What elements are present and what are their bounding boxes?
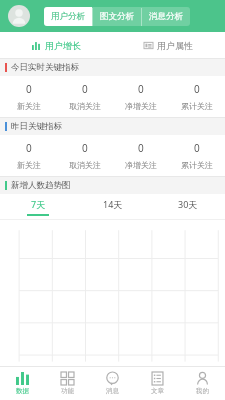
staticText: 用户增长 bbox=[45, 40, 81, 51]
button[interactable]: Profile bbox=[8, 5, 30, 27]
button[interactable]: 消息 bbox=[90, 367, 135, 400]
staticText: 功能 bbox=[61, 387, 74, 395]
staticText: 消息分析 bbox=[149, 11, 183, 22]
button[interactable]: 用户属性 bbox=[112, 32, 225, 58]
staticText: 新增人数趋势图 bbox=[11, 180, 71, 191]
staticText: 我的 bbox=[196, 387, 209, 395]
staticText: 今日实时关键指标 bbox=[11, 62, 79, 73]
staticText: 取消关注 bbox=[69, 160, 101, 170]
staticText: 净增关注 bbox=[125, 160, 157, 170]
staticText: 30天 bbox=[178, 198, 198, 210]
staticText: 0 bbox=[138, 82, 144, 96]
staticText: 0 bbox=[26, 141, 32, 155]
button[interactable]: 14天 bbox=[75, 194, 150, 219]
staticText: 取消关注 bbox=[69, 101, 101, 111]
button[interactable]: 30天 bbox=[150, 194, 225, 219]
staticText: 数据 bbox=[16, 387, 29, 395]
button[interactable]: 消息分析 bbox=[142, 7, 190, 26]
staticText: 0 bbox=[194, 82, 200, 96]
button[interactable]: 我的 bbox=[180, 367, 225, 400]
staticText: 0 bbox=[194, 141, 200, 155]
staticText: 累计关注 bbox=[181, 101, 213, 111]
staticText: 昨日关键指标 bbox=[11, 121, 62, 132]
staticText: 用户属性 bbox=[157, 40, 193, 51]
button[interactable]: 文章 bbox=[135, 367, 180, 400]
staticText: 新关注 bbox=[17, 101, 41, 111]
staticText: 净增关注 bbox=[125, 101, 157, 111]
button[interactable]: 功能 bbox=[45, 367, 90, 400]
staticText: 0 bbox=[138, 141, 144, 155]
button[interactable]: 0 bbox=[169, 76, 225, 117]
button[interactable]: 0 bbox=[57, 76, 113, 117]
staticText: 图文分析 bbox=[100, 11, 134, 22]
button[interactable]: 7天 bbox=[0, 194, 75, 219]
button[interactable]: 用户分析 bbox=[44, 7, 92, 26]
button[interactable]: 0 bbox=[113, 76, 169, 117]
staticText: 用户分析 bbox=[51, 11, 85, 22]
button[interactable]: 0 bbox=[169, 135, 225, 176]
staticText: 0 bbox=[26, 82, 32, 96]
button[interactable]: 0 bbox=[57, 135, 113, 176]
button[interactable]: 图文分析 bbox=[93, 7, 141, 26]
staticText: 累计关注 bbox=[181, 160, 213, 170]
button[interactable]: 0 bbox=[113, 135, 169, 176]
staticText: 文章 bbox=[151, 387, 164, 395]
staticText: 0 bbox=[82, 82, 88, 96]
staticText: 消息 bbox=[106, 387, 119, 395]
staticText: 0 bbox=[82, 141, 88, 155]
button[interactable]: 0 bbox=[0, 76, 57, 117]
staticText: 新关注 bbox=[17, 160, 41, 170]
button[interactable]: 用户增长 bbox=[0, 32, 112, 58]
button[interactable]: 0 bbox=[0, 135, 57, 176]
staticText: 14天 bbox=[103, 198, 123, 210]
button[interactable]: 数据 bbox=[0, 367, 45, 400]
staticText: 7天 bbox=[31, 198, 46, 210]
